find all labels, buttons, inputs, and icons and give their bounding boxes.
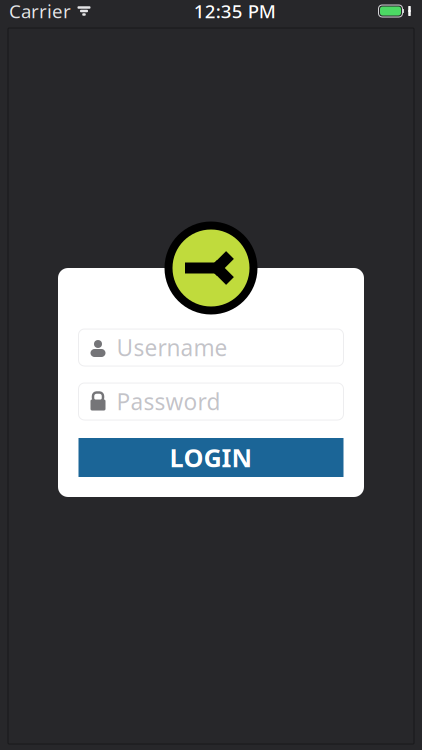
staticText: Username xyxy=(116,332,227,362)
staticText: Carrier xyxy=(9,0,71,23)
button[interactable]: LOGIN xyxy=(78,438,343,477)
button[interactable]: Username xyxy=(78,329,343,366)
staticText: Password xyxy=(116,386,220,416)
staticText: LOGIN xyxy=(169,441,252,474)
staticText: 12:35 PM xyxy=(194,0,276,23)
button[interactable]: Password xyxy=(78,383,343,420)
